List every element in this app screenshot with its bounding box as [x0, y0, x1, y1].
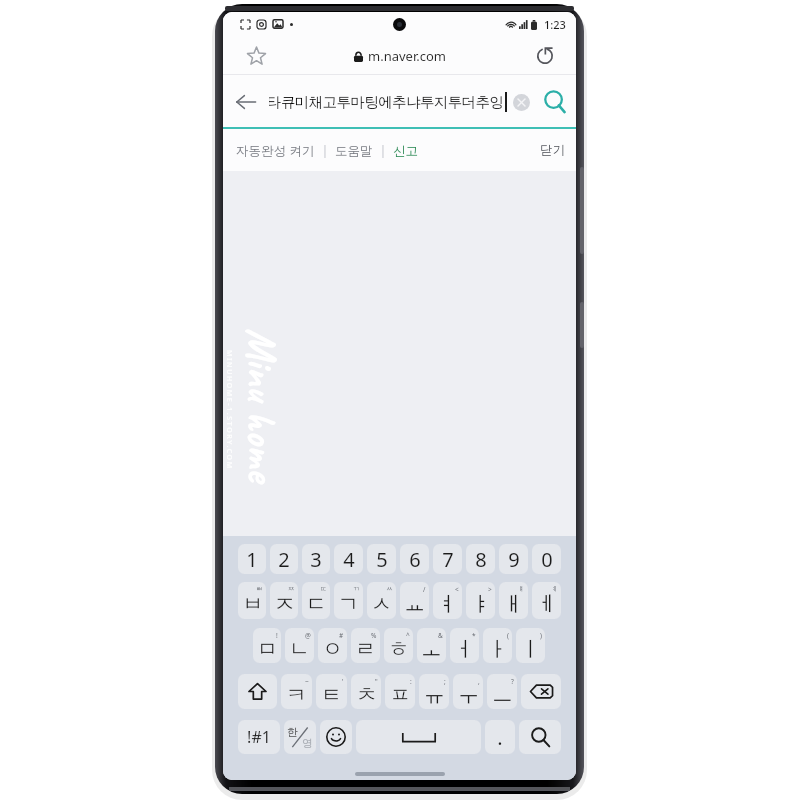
button[interactable]: .	[485, 720, 515, 754]
button[interactable]: Space	[356, 720, 481, 754]
button[interactable]: 5	[367, 544, 396, 574]
staticText: 7	[442, 546, 454, 573]
staticText: <	[455, 585, 459, 594]
staticText: ㅣ	[520, 636, 541, 662]
button[interactable]: Clear	[508, 89, 534, 115]
staticText: Minu home	[235, 328, 287, 482]
staticText: |	[373, 142, 393, 159]
staticText: ㅏ	[487, 636, 508, 662]
button[interactable]: ㅑ	[466, 582, 495, 619]
staticText: 6	[409, 546, 421, 573]
button[interactable]: Backspace	[521, 674, 561, 709]
button[interactable]: ㅁ	[253, 628, 281, 663]
staticText: 0	[541, 546, 553, 573]
staticText: !	[276, 631, 278, 640]
button[interactable]: ㅣ	[516, 628, 545, 663]
button[interactable]: 7	[433, 544, 462, 574]
button[interactable]: Language	[284, 720, 316, 754]
staticText: 9	[508, 546, 520, 573]
staticText: ㄴ	[289, 636, 310, 662]
staticText: )	[540, 631, 542, 640]
button[interactable]: 1	[238, 544, 266, 574]
other: Space	[402, 732, 436, 743]
staticText: .	[497, 724, 503, 751]
staticText: ^	[406, 631, 410, 640]
staticText: (	[507, 631, 509, 640]
button[interactable]: ㅂ	[238, 582, 266, 619]
staticText: ㅠ	[424, 682, 445, 708]
button[interactable]: 2	[270, 544, 298, 574]
button[interactable]: ㅍ	[385, 674, 415, 709]
staticText: ㅒ	[518, 585, 525, 593]
staticText: &	[438, 631, 443, 640]
staticText: 8	[475, 546, 487, 573]
staticText: 3	[310, 546, 322, 573]
button[interactable]: Bookmark	[241, 41, 271, 71]
button[interactable]: ㅊ	[351, 674, 381, 709]
staticText: ㅁ	[257, 636, 278, 662]
staticText: 2	[278, 546, 290, 573]
other: Shift	[248, 682, 267, 701]
button[interactable]: 8	[466, 544, 495, 574]
staticText: ㄸ	[320, 585, 327, 593]
button[interactable]: 6	[400, 544, 429, 574]
button[interactable]: ㄷ	[302, 582, 330, 619]
button[interactable]: 4	[334, 544, 363, 574]
staticText: ㅔ	[536, 591, 557, 617]
staticText: /	[423, 585, 426, 594]
button[interactable]: 0	[532, 544, 561, 574]
button[interactable]: ㅓ	[450, 628, 479, 663]
button[interactable]: ㅇ	[318, 628, 347, 663]
button[interactable]: 도움말	[335, 143, 373, 159]
staticText: ㄹ	[355, 636, 376, 662]
staticText: ㅑ	[470, 591, 491, 617]
button[interactable]: ㅜ	[453, 674, 483, 709]
button[interactable]: ㅌ	[316, 674, 347, 709]
button[interactable]: Back	[229, 85, 263, 119]
staticText: |	[315, 142, 335, 159]
staticText: @	[305, 631, 311, 640]
staticText: %	[371, 631, 377, 640]
button[interactable]: ㅔ	[532, 582, 561, 619]
button[interactable]: 신고	[393, 143, 418, 159]
staticText: ㅐ	[503, 591, 524, 617]
button[interactable]: ㅋ	[281, 674, 312, 709]
button[interactable]: Shift	[238, 674, 277, 709]
button[interactable]: ㅕ	[433, 582, 462, 619]
button[interactable]: ㅗ	[417, 628, 446, 663]
button[interactable]: Reload	[530, 41, 560, 71]
button[interactable]: Search	[538, 85, 572, 119]
button[interactable]: 닫기	[540, 142, 565, 158]
button[interactable]: ㅛ	[400, 582, 429, 619]
staticText: ㅖ	[551, 585, 558, 593]
button[interactable]: 3	[302, 544, 330, 574]
button[interactable]: ㄱ	[334, 582, 363, 619]
button[interactable]: 자동완성 켜기	[236, 142, 315, 159]
button[interactable]: Emoji	[320, 720, 352, 754]
staticText: ㅌ	[321, 682, 342, 708]
other: Emoji	[326, 727, 346, 747]
staticText: 5	[376, 546, 388, 573]
staticText: ㅕ	[437, 591, 458, 617]
staticText: ㅎ	[388, 636, 409, 662]
button[interactable]: 9	[499, 544, 528, 574]
staticText: 4	[343, 546, 355, 573]
staticText: ~	[305, 677, 309, 686]
button[interactable]: ㅏ	[483, 628, 512, 663]
button[interactable]: ㅐ	[499, 582, 528, 619]
other: Backspace	[530, 684, 553, 699]
staticText: ㅂ	[242, 591, 263, 617]
staticText: MINUHOME-1.STORY.COM	[224, 350, 234, 470]
staticText: ㅇ	[322, 636, 343, 662]
button[interactable]: ㅠ	[419, 674, 449, 709]
button[interactable]: ㅈ	[270, 582, 298, 619]
staticText: ㅅ	[371, 591, 392, 617]
button[interactable]: ㄴ	[285, 628, 314, 663]
button[interactable]: ㅅ	[367, 582, 396, 619]
button[interactable]: ㅎ	[384, 628, 413, 663]
button[interactable]: ㅡ	[487, 674, 517, 709]
button[interactable]: !#1	[238, 720, 280, 754]
button[interactable]: ㄹ	[351, 628, 380, 663]
other: Search	[530, 727, 551, 748]
button[interactable]: Search	[519, 720, 561, 754]
